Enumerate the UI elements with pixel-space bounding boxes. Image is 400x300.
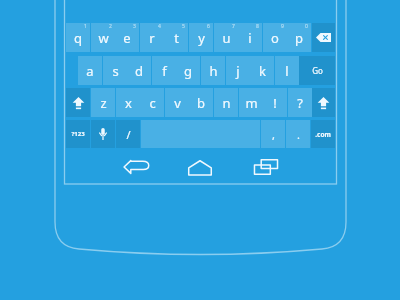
button[interactable]: b — [189, 88, 213, 117]
staticText: ? — [297, 94, 303, 112]
button[interactable]: 6 — [189, 23, 213, 52]
staticText: h — [209, 62, 218, 80]
button[interactable]: Home — [182, 154, 218, 180]
button[interactable]: 9 — [263, 23, 287, 52]
staticText: c — [149, 94, 156, 112]
staticText: d — [135, 62, 143, 80]
button[interactable]: ! — [263, 88, 287, 117]
staticText: .com — [315, 130, 331, 139]
button[interactable]: Recents — [248, 154, 284, 180]
staticText: 8 — [256, 23, 259, 30]
staticText: x — [125, 94, 132, 112]
staticText: ?123 — [71, 130, 85, 138]
button[interactable]: Shift — [66, 88, 90, 117]
staticText: s — [112, 62, 119, 80]
button[interactable]: Back — [118, 154, 154, 180]
button[interactable]: 5 — [164, 23, 188, 52]
staticText: b — [197, 94, 205, 112]
staticText: 4 — [158, 23, 161, 30]
staticText: 7 — [232, 23, 235, 30]
button[interactable]: 3 — [115, 23, 139, 52]
staticText: 0 — [305, 23, 308, 30]
button[interactable]: v — [165, 88, 189, 117]
button[interactable]: n — [214, 88, 238, 117]
button[interactable]: 0 — [287, 23, 311, 52]
button[interactable]: ?123 — [66, 120, 90, 148]
button[interactable]: g — [176, 56, 200, 85]
button[interactable]: x — [116, 88, 140, 117]
button[interactable]: k — [250, 56, 274, 85]
staticText: 6 — [207, 23, 210, 30]
staticText: g — [184, 62, 192, 80]
button[interactable]: l — [275, 56, 299, 85]
staticText: l — [285, 62, 289, 80]
staticText: j — [236, 62, 240, 80]
button[interactable]: Voice input — [91, 120, 115, 148]
button[interactable]: 4 — [140, 23, 164, 52]
staticText: e — [123, 29, 131, 47]
button[interactable]: z — [91, 88, 115, 117]
staticText: 5 — [182, 23, 185, 30]
button[interactable]: 1 — [66, 23, 90, 52]
staticText: 1 — [84, 23, 87, 30]
staticText: o — [271, 29, 279, 47]
staticText: p — [295, 29, 303, 47]
staticText: y — [198, 29, 205, 47]
staticText: 9 — [281, 23, 284, 30]
button[interactable]: . — [286, 120, 310, 148]
staticText: m — [245, 94, 258, 112]
button[interactable]: h — [201, 56, 225, 85]
staticText: v — [174, 94, 181, 112]
button[interactable]: 8 — [238, 23, 262, 52]
staticText: f — [162, 62, 167, 80]
button[interactable]: c — [140, 88, 164, 117]
button[interactable]: / — [116, 120, 140, 148]
button[interactable]: f — [152, 56, 176, 85]
staticText: 3 — [133, 23, 136, 30]
staticText: u — [222, 29, 231, 47]
button[interactable]: .com — [311, 120, 335, 148]
staticText: i — [248, 29, 252, 47]
button[interactable]: a — [78, 56, 102, 85]
button[interactable]: s — [103, 56, 127, 85]
staticText: a — [86, 62, 94, 80]
staticText: r — [149, 29, 155, 47]
staticText: Go — [312, 65, 323, 76]
staticText: 2 — [109, 23, 112, 30]
staticText: k — [259, 62, 266, 80]
button[interactable]: 2 — [91, 23, 115, 52]
button[interactable]: m — [239, 88, 263, 117]
button[interactable]: Go — [299, 56, 335, 85]
staticText: . — [297, 127, 300, 142]
staticText: / — [126, 127, 131, 142]
staticText: w — [98, 29, 109, 47]
staticText: t — [174, 29, 179, 47]
staticText: , — [272, 127, 275, 142]
staticText: n — [222, 94, 231, 112]
button[interactable]: 7 — [214, 23, 238, 52]
button[interactable]: , — [261, 120, 285, 148]
staticText: z — [100, 94, 107, 112]
button[interactable]: d — [127, 56, 151, 85]
staticText: ! — [273, 94, 277, 112]
button[interactable]: ? — [288, 88, 312, 117]
button[interactable]: Shift — [312, 88, 335, 117]
button[interactable]: Backspace — [312, 23, 335, 52]
staticText: q — [74, 29, 82, 47]
button[interactable]: j — [226, 56, 250, 85]
